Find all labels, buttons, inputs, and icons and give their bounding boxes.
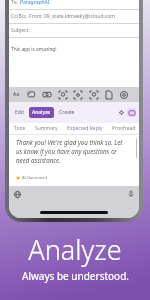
button[interactable]: Drawing [86, 87, 101, 102]
button[interactable]: Document [101, 87, 116, 102]
staticText: Expected Reply [67, 125, 103, 132]
button[interactable]: Photos [24, 87, 39, 102]
staticText: Analyze [32, 109, 51, 116]
button[interactable]: Dictate [126, 189, 136, 199]
staticText: ParagraphAI [20, 0, 50, 6]
button[interactable]: Expected Reply [66, 125, 104, 132]
button[interactable]: Camera [39, 87, 54, 102]
button[interactable]: Language [12, 189, 22, 199]
button[interactable]: Summary [34, 125, 59, 132]
button[interactable]: Settings [116, 107, 126, 117]
staticText: Tone [14, 125, 26, 132]
staticText: Summary [35, 125, 58, 132]
button[interactable]: Markup [55, 87, 70, 102]
button[interactable]: Scan [70, 87, 85, 102]
staticText: Proofread [112, 125, 136, 132]
button[interactable]: Tone [13, 125, 27, 132]
staticText: Always be understood. [22, 269, 129, 283]
staticText: To: [11, 0, 20, 6]
staticText: Analyze [28, 231, 122, 268]
staticText: Subject: [11, 27, 30, 34]
staticText: AI-Generated [22, 175, 48, 180]
button[interactable]: Keyboard [127, 108, 136, 117]
staticText: Create [59, 109, 75, 116]
button[interactable]: Proofread [111, 125, 137, 132]
button[interactable]: Add [116, 87, 131, 102]
staticText: Aa [13, 91, 20, 98]
button[interactable]: Analyze [29, 107, 54, 118]
button[interactable]: Text format [9, 87, 24, 102]
button[interactable]: Edit [12, 107, 27, 118]
staticText: Thank you! We're glad you think so. Let … [16, 138, 126, 165]
button[interactable]: Create [56, 107, 78, 118]
staticText: Cc/Bcc, From: 09_state.idmaeky@icloud.co… [11, 13, 115, 20]
staticText: This app is amazing! [11, 46, 57, 53]
staticText: Edit [15, 109, 24, 116]
